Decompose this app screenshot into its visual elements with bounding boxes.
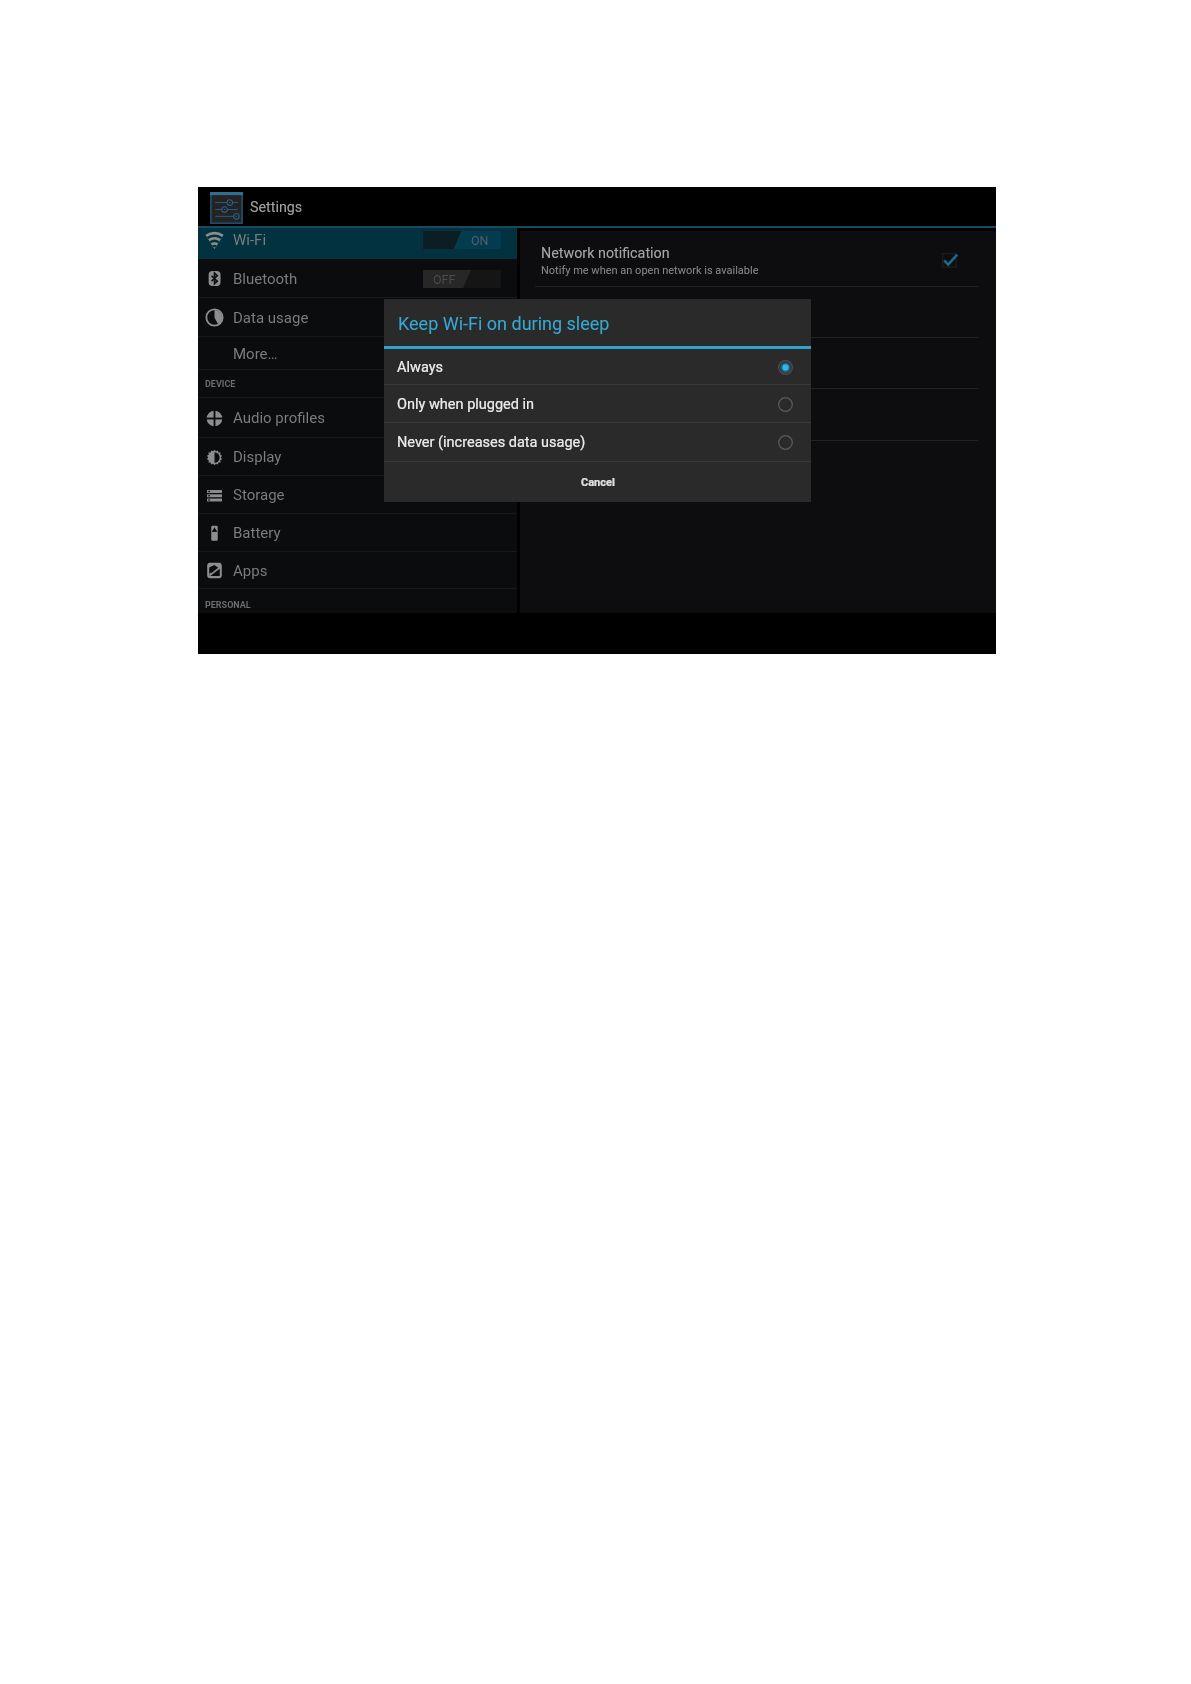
button[interactable]: Data usage [198, 298, 517, 337]
button[interactable]: Settings app icon [210, 192, 243, 224]
button[interactable]: Wi-Fi optimization [520, 338, 996, 389]
staticText: Network notification [541, 245, 670, 262]
button[interactable]: Battery [198, 514, 517, 552]
staticText: 00:00:00:00:00:00 [541, 423, 629, 436]
staticText: Always [397, 359, 444, 376]
staticText: Data usage [233, 309, 309, 327]
button[interactable]: Cancel [384, 462, 811, 502]
button[interactable]: Display [198, 438, 517, 476]
staticText: OFF [433, 272, 456, 287]
staticText: Only when plugged in [397, 396, 535, 413]
button[interactable]: Keep Wi-Fi on during sleep [520, 287, 996, 338]
staticText: ON [471, 233, 489, 248]
staticText: Cancel [581, 476, 615, 489]
button[interactable]: Network notification enabled [942, 253, 958, 269]
button[interactable]: Storage [198, 476, 517, 514]
staticText: Battery [233, 524, 281, 542]
staticText: Keep Wi-Fi on during sleep [541, 301, 709, 318]
staticText: Bluetooth [233, 270, 298, 288]
button[interactable]: Network notification [520, 231, 996, 287]
button[interactable]: Audio profiles [198, 398, 517, 438]
staticText: Audio profiles [233, 409, 325, 427]
staticText: Keep Wi-Fi on during sleep [398, 313, 610, 334]
staticText: Apps [233, 562, 268, 580]
button[interactable]: MAC address [520, 390, 996, 441]
staticText: Wi-Fi [233, 231, 267, 249]
button[interactable]: Bluetooth [198, 259, 517, 298]
button[interactable]: PERSONAL [198, 589, 517, 621]
staticText: Notify me when an open network is availa… [541, 264, 759, 277]
staticText: Storage [233, 486, 285, 504]
button[interactable]: Never (increases data usage) [384, 423, 811, 462]
button[interactable]: Wi-Fi [198, 221, 517, 259]
staticText: Display [233, 448, 282, 466]
staticText: Settings [250, 199, 303, 216]
staticText: Always [541, 320, 576, 333]
staticText: More… [233, 345, 278, 363]
button[interactable]: Only when plugged in [384, 385, 811, 423]
button[interactable]: More… [198, 337, 517, 370]
button[interactable]: Always [384, 349, 811, 385]
staticText: DEVICE [205, 379, 236, 390]
staticText: PERSONAL [205, 600, 251, 611]
button[interactable]: Wi-Fi on [423, 231, 501, 249]
button[interactable]: Bluetooth off [423, 270, 501, 288]
button[interactable]: Apps [198, 552, 517, 589]
staticText: Never (increases data usage) [397, 434, 586, 451]
button[interactable]: DEVICE [198, 370, 517, 398]
